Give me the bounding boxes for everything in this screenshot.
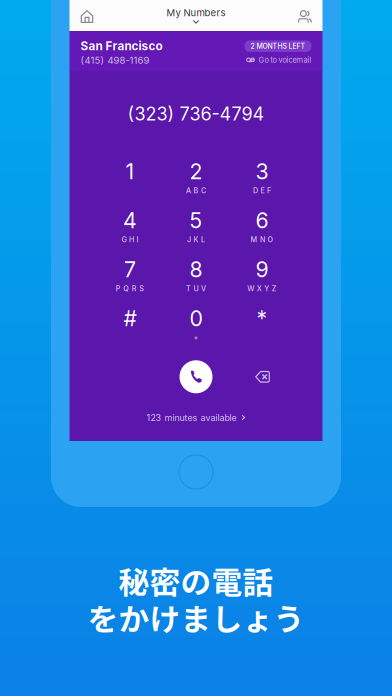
staticText: MNO xyxy=(250,235,273,244)
button[interactable]: 1 xyxy=(97,154,163,196)
staticText: 2 MONTHS LEFT xyxy=(250,42,305,50)
button[interactable]: * xyxy=(229,301,295,343)
button[interactable]: # xyxy=(97,301,163,343)
staticText: JKL xyxy=(187,235,205,244)
staticText: + xyxy=(193,333,198,342)
staticText: GHI xyxy=(121,235,138,244)
button[interactable]: Contacts xyxy=(287,0,322,32)
staticText: をかけましょう xyxy=(87,595,304,640)
staticText: # xyxy=(123,305,136,331)
button[interactable]: 9 xyxy=(229,252,295,294)
staticText: * xyxy=(256,305,267,331)
button[interactable]: 6 xyxy=(229,203,295,245)
button[interactable]: Call xyxy=(176,357,216,397)
staticText: 9 xyxy=(255,256,268,282)
button[interactable]: 4 xyxy=(97,203,163,245)
staticText: ABC xyxy=(186,186,206,195)
staticText: 6 xyxy=(255,207,268,233)
button[interactable]: 0 xyxy=(163,301,229,343)
button[interactable]: 2 xyxy=(163,154,229,196)
button[interactable]: 3 xyxy=(229,154,295,196)
staticText: 123 minutes available xyxy=(147,412,237,423)
staticText: My Numbers xyxy=(166,7,225,18)
staticText: 7 xyxy=(124,256,136,282)
button[interactable]: Home xyxy=(69,0,104,32)
staticText: (415) 498-1169 xyxy=(80,54,149,66)
staticText: (323) 736-4794 xyxy=(127,103,264,125)
button[interactable]: My Numbers xyxy=(166,0,225,31)
staticText: PQRS xyxy=(116,284,144,293)
button[interactable]: 5 xyxy=(163,203,229,245)
staticText: San Francisco xyxy=(80,39,162,53)
staticText: 8 xyxy=(189,256,202,282)
staticText: 0 xyxy=(189,305,202,331)
staticText: 4 xyxy=(123,207,137,233)
button[interactable]: 7 xyxy=(97,252,163,294)
button[interactable]: 123 minutes available xyxy=(147,408,245,428)
staticText: Go to voicemail xyxy=(258,55,311,64)
staticText: TUV xyxy=(186,284,206,293)
staticText: WXYZ xyxy=(247,284,277,293)
staticText: DEF xyxy=(253,186,271,195)
button[interactable]: Delete xyxy=(245,363,279,391)
staticText: 5 xyxy=(189,207,202,233)
button[interactable]: 8 xyxy=(163,252,229,294)
staticText: 秘密の電話 xyxy=(118,558,273,603)
staticText: 1 xyxy=(125,158,134,184)
staticText: 3 xyxy=(255,158,268,184)
staticText: 2 xyxy=(189,158,202,184)
